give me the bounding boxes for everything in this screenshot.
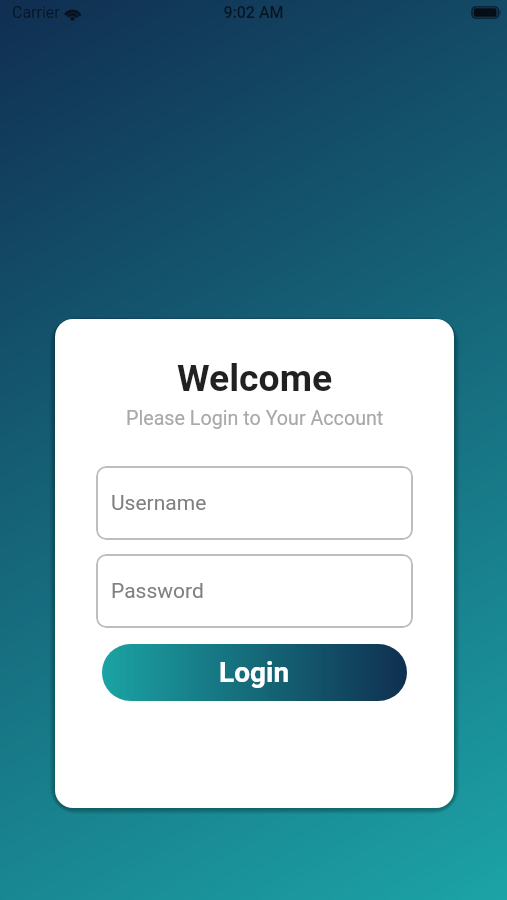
staticText: Password: [111, 579, 204, 604]
staticText: Login: [219, 656, 290, 689]
button[interactable]: Login: [102, 644, 407, 701]
staticText: Please Login to Your Account: [126, 407, 384, 430]
button[interactable]: Username: [96, 466, 413, 540]
other: Wi-Fi signal: [63, 5, 82, 20]
staticText: Username: [111, 491, 207, 516]
staticText: Welcome: [177, 356, 333, 400]
button[interactable]: Password: [96, 554, 413, 628]
other: Battery full: [470, 0, 502, 25]
staticText: Carrier: [12, 3, 60, 22]
staticText: 9:02 AM: [223, 3, 284, 22]
